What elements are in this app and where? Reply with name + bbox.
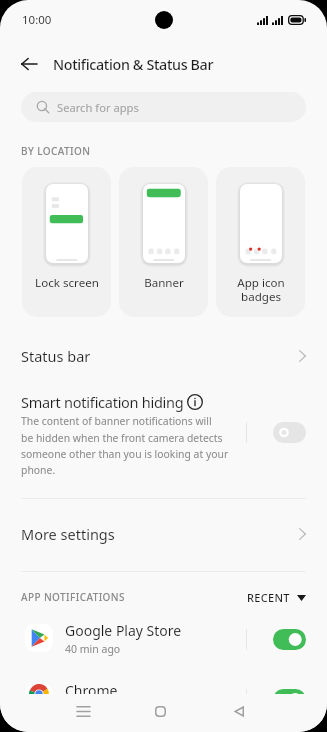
staticText: 40 min ago xyxy=(65,642,121,656)
staticText: RECENT xyxy=(247,590,290,605)
staticText: Google Play Store xyxy=(65,621,182,640)
button[interactable]: Recent apps xyxy=(64,694,103,732)
button[interactable]: Lock screen xyxy=(22,167,111,317)
staticText: Lock screen xyxy=(35,275,99,291)
staticText: Search for apps xyxy=(57,100,139,115)
button[interactable]: More settings xyxy=(0,511,327,557)
staticText: Chrome xyxy=(65,681,118,700)
staticText: 2 h ago xyxy=(65,702,102,716)
button[interactable]: App icon badges xyxy=(216,167,305,317)
button[interactable]: Home xyxy=(141,694,180,732)
staticText: Status bar xyxy=(21,346,91,366)
button[interactable]: Smart notification hiding xyxy=(0,387,327,487)
staticText: APP NOTIFICATIONS xyxy=(21,590,125,604)
staticText: BY LOCATION xyxy=(21,144,91,158)
staticText: Notification & Status Bar xyxy=(53,55,214,74)
staticText: App icon badges xyxy=(237,275,285,304)
staticText: Banner xyxy=(144,275,184,291)
button[interactable]: Google Play Store xyxy=(0,621,327,673)
staticText: More settings xyxy=(21,524,115,544)
button[interactable]: Back xyxy=(13,48,45,80)
button[interactable]: Status bar xyxy=(0,333,327,379)
button[interactable]: Back xyxy=(219,694,258,732)
button[interactable]: On xyxy=(273,629,306,650)
button[interactable]: Search for apps xyxy=(21,92,306,122)
button[interactable]: Off xyxy=(273,422,306,443)
staticText: The content of banner notifications will… xyxy=(21,414,246,477)
button[interactable]: Chrome xyxy=(0,681,327,732)
button[interactable]: RECENT xyxy=(247,590,306,605)
button[interactable]: On xyxy=(273,689,306,710)
button[interactable]: Banner xyxy=(119,167,208,317)
staticText: Smart notification hiding xyxy=(21,392,184,412)
staticText: 10:00 xyxy=(22,12,52,28)
